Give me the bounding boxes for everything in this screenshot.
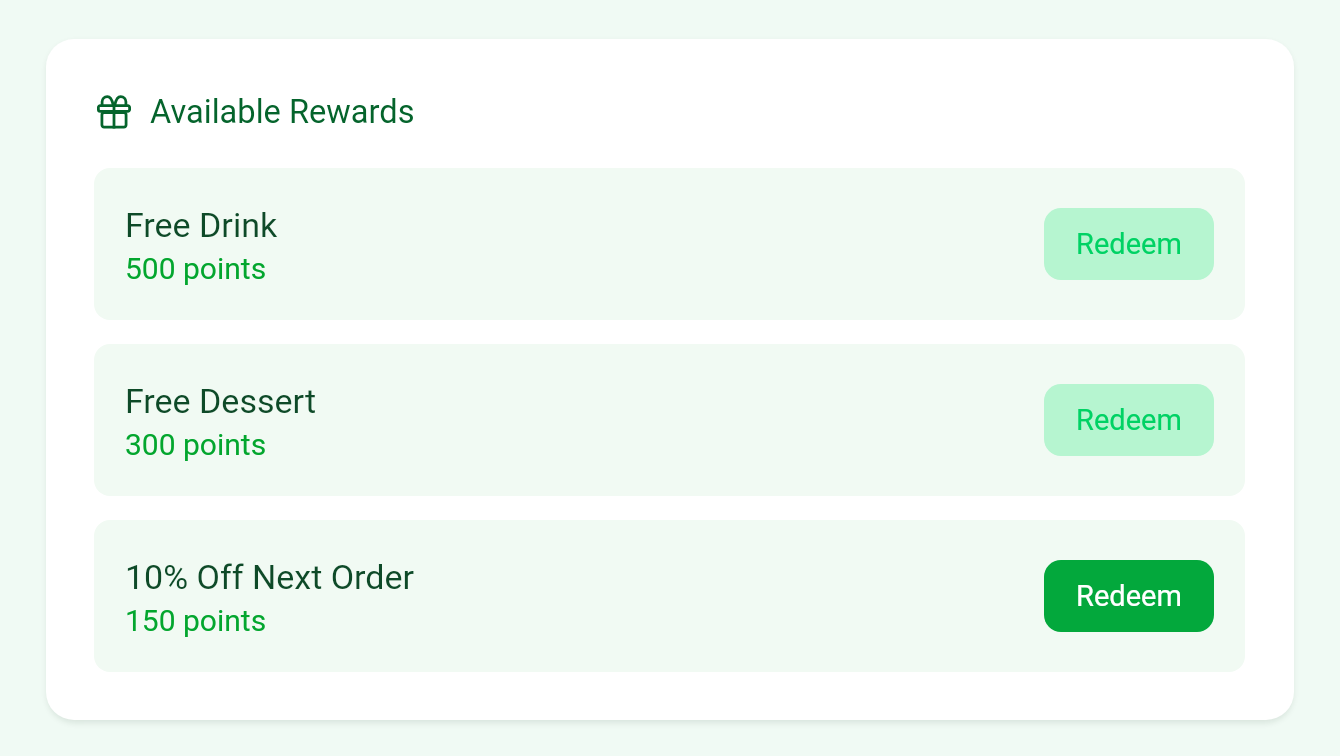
button[interactable]: Redeem	[1044, 560, 1214, 632]
button[interactable]: Free Dessert	[94, 344, 1245, 496]
button[interactable]: Free Drink	[94, 168, 1245, 320]
staticText: Redeem	[1076, 579, 1182, 613]
button[interactable]: 10% Off Next Order	[94, 520, 1245, 672]
button[interactable]: Redeem	[1044, 384, 1214, 456]
staticText: 10% Off Next Order	[125, 557, 415, 597]
staticText: 300 points	[125, 427, 267, 462]
staticText: Redeem	[1076, 403, 1182, 437]
staticText: 150 points	[125, 603, 267, 638]
staticText: Free Drink	[125, 205, 278, 245]
staticText: Redeem	[1076, 227, 1182, 261]
button[interactable]: Redeem	[1044, 208, 1214, 280]
staticText: Free Dessert	[125, 381, 317, 421]
staticText: 500 points	[125, 251, 267, 286]
staticText: Available Rewards	[150, 93, 415, 131]
other: Rewards	[97, 95, 131, 129]
